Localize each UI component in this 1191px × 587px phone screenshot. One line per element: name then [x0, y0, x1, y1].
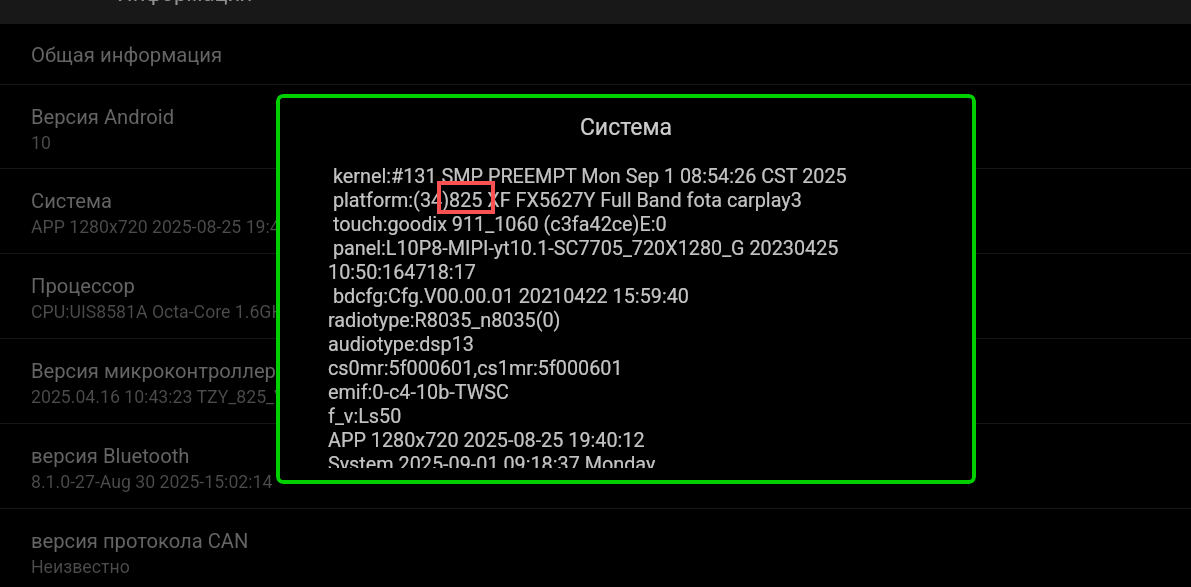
staticText: 8.1.0-27-Aug 30 2025-15:02:14 — [31, 472, 273, 493]
staticText: Версия Android — [31, 105, 175, 129]
button[interactable]: Система — [0, 169, 1191, 253]
staticText: Информация — [117, 0, 253, 5]
staticText: 10 — [31, 133, 51, 154]
staticText: Общая информация — [31, 43, 223, 67]
staticText: Неизвестно — [31, 557, 130, 578]
staticText: 2025.04.16 10:43:23 TZY_825_V1 — [31, 387, 296, 408]
button[interactable]: Общая информация — [0, 24, 1191, 83]
button[interactable]: Система — [276, 94, 976, 484]
button[interactable]: Версия Android — [0, 85, 1191, 169]
staticText: Система — [31, 189, 112, 213]
staticText: APP 1280x720 2025-08-25 19:40:12 — [31, 217, 314, 238]
staticText: Версия микроконтроллера — [31, 359, 287, 383]
staticText: версия Bluetooth — [31, 444, 190, 468]
staticText: Процессор — [31, 274, 135, 298]
staticText: Система — [276, 114, 976, 141]
staticText: CPU:UIS8581A Octa-Core 1.6GHz — [31, 302, 293, 323]
other: Выделение — [437, 181, 495, 214]
button[interactable]: версия протокола CAN — [0, 509, 1191, 587]
button[interactable]: Версия микроконтроллера — [0, 339, 1191, 423]
staticText: версия протокола CAN — [31, 529, 249, 553]
button[interactable]: версия Bluetooth — [0, 424, 1191, 508]
button[interactable]: kernel:#131 SMP PREEMPT Mon Sep 1 08:54:… — [276, 150, 976, 468]
button[interactable]: Информация об устройстве — [0, 0, 1191, 24]
staticText: kernel:#131 SMP PREEMPT Mon Sep 1 08:54:… — [328, 165, 847, 468]
button[interactable]: Процессор — [0, 254, 1191, 338]
